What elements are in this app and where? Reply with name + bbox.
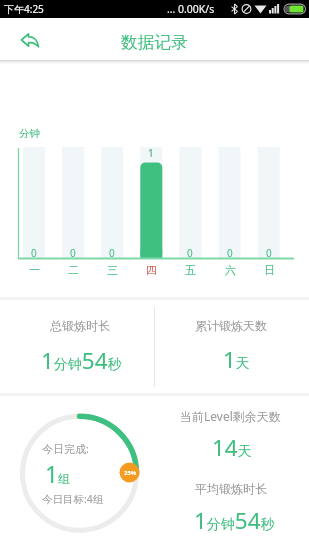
staticText: 下午4:25 bbox=[4, 2, 44, 16]
staticText: 14天 bbox=[212, 432, 252, 463]
staticText: 1组 bbox=[45, 458, 71, 489]
staticText: 二 bbox=[68, 263, 79, 277]
staticText: 五 bbox=[185, 263, 196, 277]
staticText: 当前Level剩余天数 bbox=[180, 408, 281, 424]
staticText: 日 bbox=[264, 263, 275, 277]
staticText: 0 bbox=[227, 246, 233, 260]
staticText: 四 bbox=[146, 263, 157, 277]
staticText: 一 bbox=[29, 263, 40, 277]
staticText: 1 bbox=[148, 146, 154, 160]
staticText: 累计锻炼天数 bbox=[195, 318, 267, 333]
staticText: 0 bbox=[187, 246, 193, 260]
button[interactable] bbox=[12, 26, 48, 54]
staticText: 六 bbox=[225, 263, 236, 277]
staticText: 0 bbox=[109, 246, 115, 260]
staticText: 1分钟54秒 bbox=[41, 345, 122, 376]
staticText: 0 bbox=[70, 246, 76, 260]
staticText: 今日目标:4组 bbox=[42, 492, 104, 506]
staticText: 平均锻炼时长 bbox=[195, 481, 267, 496]
staticText: … 0.00K/s bbox=[167, 2, 215, 16]
staticText: 1天 bbox=[223, 344, 250, 375]
staticText: 总锻炼时长 bbox=[50, 318, 110, 333]
staticText: 25% bbox=[124, 469, 137, 477]
staticText: 0 bbox=[31, 246, 37, 260]
staticText: 今日完成: bbox=[42, 441, 89, 456]
staticText: 1分钟54秒 bbox=[194, 505, 275, 536]
staticText: 0 bbox=[266, 246, 272, 260]
staticText: 数据记录 bbox=[121, 32, 189, 53]
staticText: 分钟 bbox=[19, 127, 40, 140]
staticText: 三 bbox=[107, 263, 118, 277]
